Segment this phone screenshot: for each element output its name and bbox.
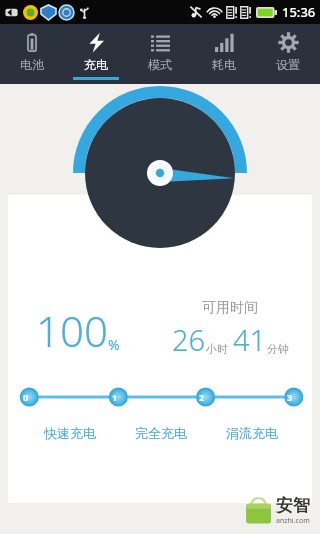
button[interactable]: 设置 <box>256 24 320 84</box>
button[interactable]: 快速充电 <box>24 420 115 446</box>
staticText: % <box>108 335 120 354</box>
staticText: 15:36 <box>282 3 316 21</box>
staticText: 快速充电 <box>44 425 96 441</box>
staticText: 设置 <box>276 57 300 72</box>
staticText: anzhi.com <box>276 516 310 526</box>
staticText: 模式 <box>148 57 172 72</box>
button[interactable]: 完全充电 <box>115 420 206 446</box>
staticText: 26 <box>172 320 206 359</box>
button[interactable]: 耗电 <box>192 24 256 84</box>
button[interactable]: 电池 <box>0 24 64 84</box>
staticText: 电池 <box>20 57 44 72</box>
staticText: 100 <box>36 302 108 359</box>
staticText: 小时 <box>206 342 228 356</box>
button[interactable]: 模式 <box>128 24 192 84</box>
staticText: 涓流充电 <box>226 425 278 441</box>
staticText: 充电 <box>84 57 108 72</box>
button[interactable]: 涓流充电 <box>206 420 297 446</box>
staticText: 分钟 <box>267 342 289 356</box>
staticText: 41 <box>233 320 267 359</box>
button[interactable]: 充电 <box>64 24 128 84</box>
staticText: 耗电 <box>212 57 236 72</box>
other: anzhi.com watermark <box>243 495 310 526</box>
staticText: 完全充电 <box>135 425 187 441</box>
staticText: 安智 <box>276 495 310 516</box>
staticText: 可用时间 <box>202 299 258 317</box>
